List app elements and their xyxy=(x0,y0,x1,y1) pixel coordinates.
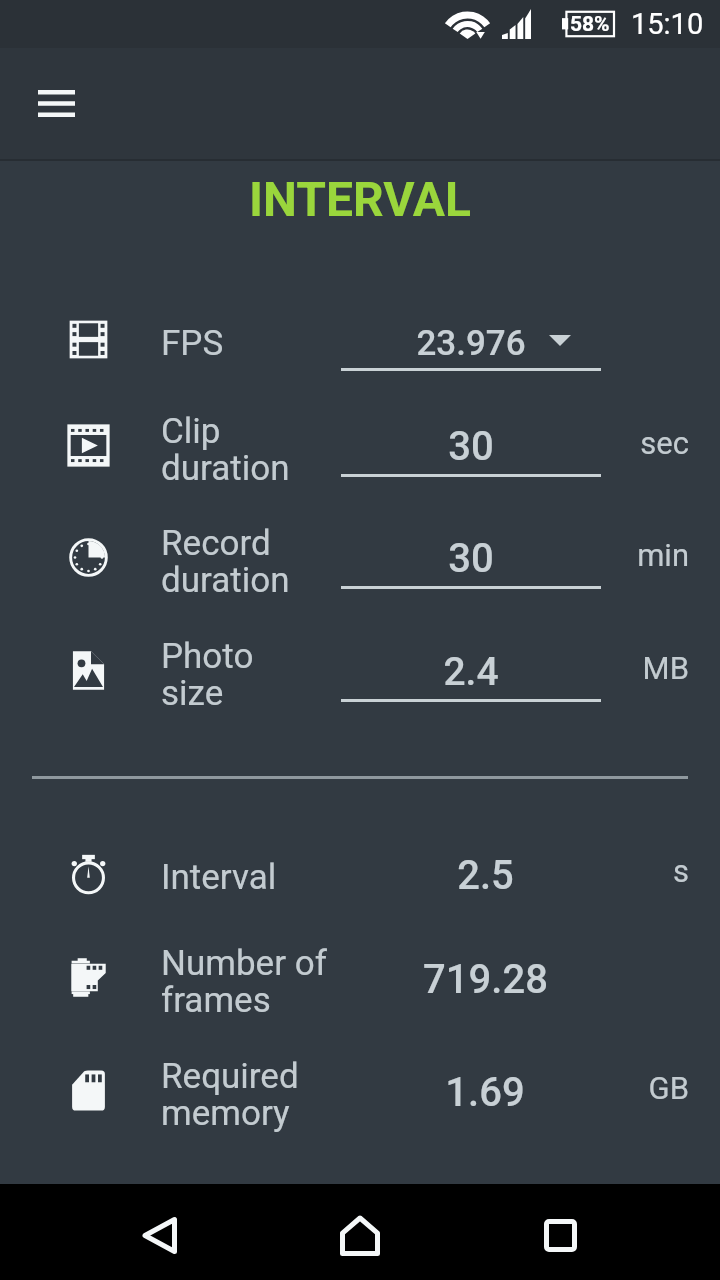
staticText: 2.4 xyxy=(443,649,499,695)
staticText: Photo size xyxy=(161,636,254,713)
staticText: MB xyxy=(609,650,689,686)
staticText: Interval xyxy=(161,857,277,898)
staticText: Record duration xyxy=(161,523,290,600)
staticText: Required memory xyxy=(161,1056,299,1133)
staticText: Clip duration xyxy=(161,411,290,488)
staticText: GB xyxy=(609,1070,689,1106)
staticText: s xyxy=(609,853,689,889)
staticText: FPS xyxy=(161,323,224,364)
staticText: 1.69 xyxy=(445,1069,525,1116)
staticText: Number of frames xyxy=(161,943,327,1020)
staticText: 15:10 xyxy=(631,7,704,41)
button[interactable]: Open navigation drawer xyxy=(26,73,86,133)
staticText: sec xyxy=(609,425,689,461)
staticText: 719.28 xyxy=(423,956,548,1003)
staticText: 30 xyxy=(448,423,494,470)
button[interactable]: Back xyxy=(111,1187,207,1280)
button[interactable]: Home xyxy=(312,1187,408,1280)
staticText: 23.976 xyxy=(416,323,526,364)
button[interactable]: Recent apps xyxy=(512,1187,608,1280)
staticText: 58% xyxy=(570,12,610,37)
button[interactable]: 23.976 xyxy=(341,300,601,368)
staticText: min xyxy=(609,537,689,573)
staticText: INTERVAL xyxy=(0,171,720,227)
button[interactable]: 2.4 xyxy=(341,631,601,699)
staticText: 2.5 xyxy=(457,852,514,899)
button[interactable]: 30 xyxy=(341,518,601,586)
staticText: 30 xyxy=(448,535,494,582)
button[interactable]: 30 xyxy=(341,406,601,474)
